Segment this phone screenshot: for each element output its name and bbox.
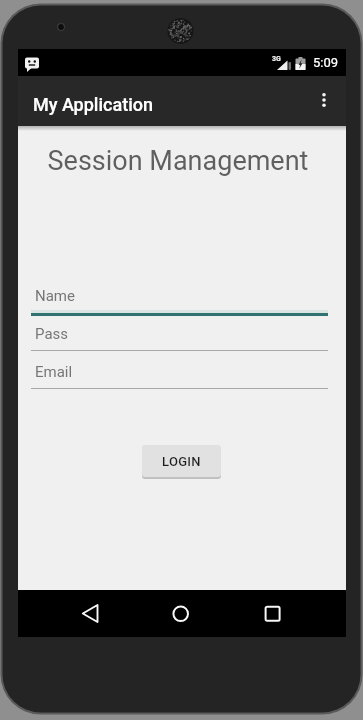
- button[interactable]: [250, 590, 298, 637]
- staticText: Name: [35, 287, 75, 305]
- staticText: My Application: [33, 94, 154, 115]
- button[interactable]: Pass: [31, 320, 328, 356]
- button[interactable]: [158, 590, 206, 637]
- button[interactable]: [302, 76, 346, 126]
- staticText: LOGIN: [162, 454, 201, 469]
- staticText: Pass: [35, 325, 69, 343]
- staticText: Email: [35, 363, 73, 381]
- staticText: Session Management: [14, 145, 342, 177]
- staticText: 3G: [272, 55, 281, 63]
- button[interactable]: [66, 590, 114, 637]
- button[interactable]: Name: [31, 282, 328, 318]
- button[interactable]: Email: [31, 358, 328, 394]
- button[interactable]: LOGIN: [142, 445, 221, 477]
- staticText: 5:09: [313, 55, 339, 70]
